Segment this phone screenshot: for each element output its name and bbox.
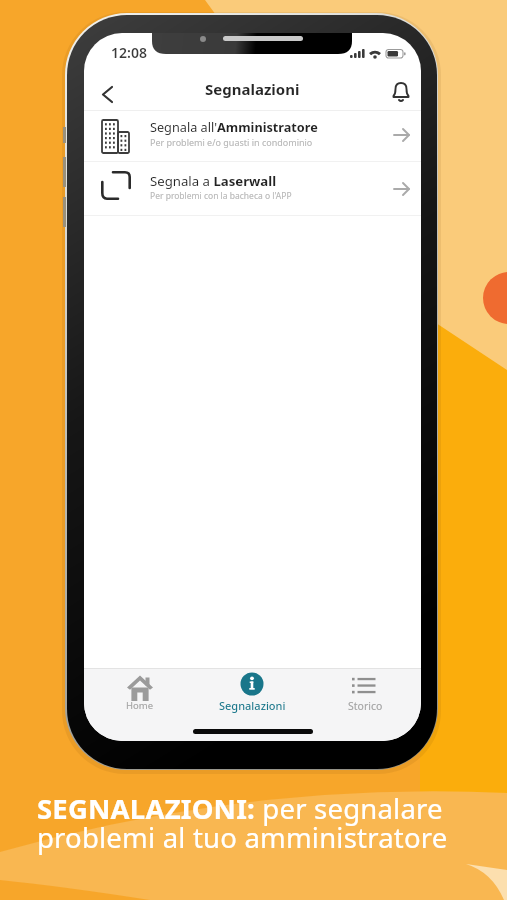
staticText: Segnala a Laserwall	[150, 172, 277, 190]
button[interactable]	[90, 77, 126, 111]
staticText: Segnala all'Amministratore	[150, 118, 318, 135]
button[interactable]	[384, 75, 418, 109]
staticText: Home	[126, 699, 154, 712]
button[interactable]: Segnala all'Amministratore	[84, 111, 421, 161]
button[interactable]: Segnala a Laserwall	[84, 162, 421, 215]
staticText: Segnalazioni	[205, 79, 300, 99]
staticText: SEGNALAZIONI: per segnalare problemi al …	[37, 790, 448, 856]
button[interactable]: Segnalazioni	[217, 670, 287, 716]
staticText: 12:08	[111, 43, 147, 62]
staticText: Per problemi con la bacheca o l'APP	[150, 190, 292, 202]
staticText: Segnalazioni	[219, 698, 286, 713]
staticText: Storico	[348, 699, 383, 713]
button[interactable]: Storico	[335, 670, 395, 716]
button[interactable]: Home	[110, 670, 170, 716]
staticText: Per problemi e/o guasti in condominio	[150, 136, 313, 148]
